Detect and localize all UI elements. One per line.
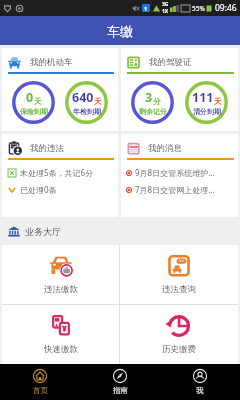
staticText: 我的消息	[148, 143, 182, 154]
staticText: 天	[94, 97, 102, 106]
staticText: 0	[26, 89, 34, 106]
staticText: 我的机动车	[30, 57, 73, 68]
staticText: 9月8日交管系统维护...	[135, 167, 215, 178]
staticText: 未处理5条，共记6分	[20, 167, 94, 178]
staticText: 我的违法	[30, 143, 64, 154]
button[interactable]: 我	[160, 364, 240, 400]
staticText: 7月8日交管网上处理...	[135, 184, 215, 195]
staticText: 1	[144, 5, 148, 12]
staticText: 111	[192, 89, 214, 106]
staticText: 历史缴费	[162, 344, 196, 355]
button[interactable]: 业务大厅	[8, 217, 240, 245]
staticText: 首页	[33, 386, 48, 395]
staticText: 指南	[113, 386, 128, 395]
button[interactable]: 我的消息	[121, 134, 238, 217]
button[interactable]: 首页	[0, 364, 80, 400]
button[interactable]: 我的驾驶证	[121, 48, 238, 131]
staticText: 已处理0条	[20, 184, 57, 195]
button[interactable]: 指南	[80, 364, 160, 400]
staticText: 天	[214, 97, 222, 106]
button[interactable]: 我的违法	[2, 134, 118, 217]
button[interactable]: 违法缴款	[2, 245, 119, 304]
staticText: 车缴	[107, 23, 133, 39]
staticText: 天	[34, 97, 42, 106]
staticText: 快速缴款	[44, 344, 78, 355]
staticText: 保险到期	[20, 107, 48, 116]
staticText: 清分到期	[193, 107, 221, 116]
staticText: 业务大厅	[25, 226, 61, 237]
staticText: 3G	[162, 1, 169, 8]
staticText: 55%	[192, 4, 205, 13]
staticText: 分	[153, 97, 161, 106]
button[interactable]: 历史缴费	[120, 305, 238, 364]
staticText: 09:46	[215, 2, 237, 14]
staticText: 我的驾驶证	[149, 57, 192, 68]
staticText: 剩余记分	[139, 107, 167, 116]
staticText: 我	[196, 386, 204, 395]
button[interactable]: 快速缴款	[2, 305, 119, 364]
staticText: 1X	[162, 8, 169, 15]
button[interactable]: 违法查询	[120, 245, 238, 304]
staticText: 年检到期	[73, 107, 101, 116]
staticText: 640	[72, 89, 94, 106]
staticText: 3	[145, 89, 153, 106]
staticText: 违法缴款	[44, 284, 78, 295]
button[interactable]: 我的机动车	[2, 48, 118, 131]
staticText: 违法查询	[162, 284, 196, 295]
